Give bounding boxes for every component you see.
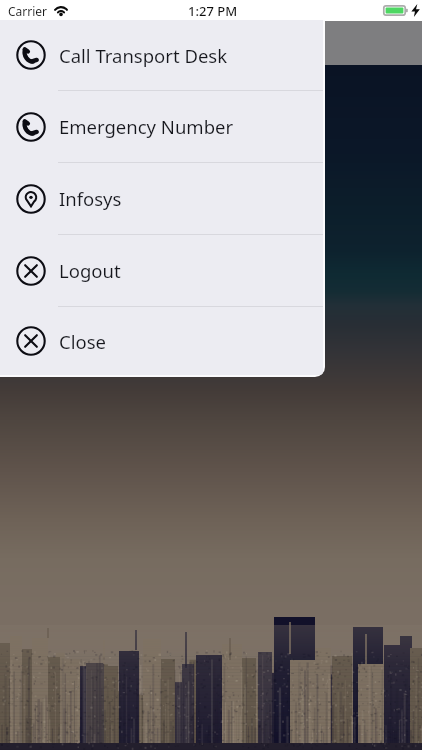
button[interactable]: Logout [0,235,323,306]
button[interactable]: Infosys [0,163,323,234]
staticText: 1:27 PM [188,2,238,20]
staticText: Infosys [59,186,122,211]
staticText: Close [59,329,106,354]
button[interactable]: Emergency Number [0,91,323,162]
staticText: Logout [59,258,121,283]
staticText: Call Transport Desk [59,43,228,68]
button[interactable]: Call Transport Desk [0,20,323,90]
staticText: Emergency Number [59,114,234,139]
staticText: Carrier [8,3,48,19]
button[interactable]: Close [0,307,323,375]
